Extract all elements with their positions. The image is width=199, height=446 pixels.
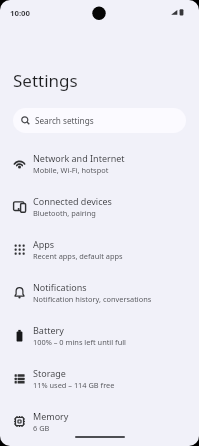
button[interactable]: Search settings [13, 108, 186, 133]
button[interactable]: Apps [0, 228, 199, 271]
staticText: Storage [33, 367, 66, 379]
staticText: Settings [13, 69, 78, 92]
staticText: Network and Internet [33, 152, 125, 164]
staticText: 11% used – 114 GB free [33, 380, 115, 390]
staticText: 100% – 0 mins left until full [33, 337, 127, 347]
button[interactable]: Connected devices [0, 185, 199, 228]
staticText: Notifications [33, 281, 87, 293]
staticText: Search settings [35, 115, 94, 126]
staticText: Memory [33, 410, 69, 422]
button[interactable]: Network and Internet [0, 142, 199, 185]
staticText: Recent apps, default apps [33, 251, 123, 261]
button[interactable]: Battery [0, 314, 199, 357]
staticText: Connected devices [33, 195, 112, 207]
staticText: Apps [33, 238, 55, 250]
button[interactable]: Notifications [0, 271, 199, 314]
staticText: Notification history, conversations [33, 294, 152, 304]
staticText: 10:00 [10, 8, 31, 19]
staticText: Mobile, Wi-Fi, hotspot [33, 165, 109, 175]
button[interactable]: Storage [0, 357, 199, 400]
button[interactable]: Memory [0, 400, 199, 443]
staticText: Battery [33, 324, 64, 336]
staticText: Bluetooth, pairing [33, 208, 96, 218]
staticText: 6 GB [33, 423, 50, 433]
